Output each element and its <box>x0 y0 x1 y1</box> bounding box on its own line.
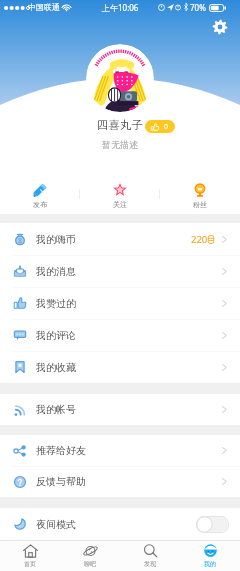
button[interactable]: 发布 <box>0 180 80 209</box>
staticText: 我的帐号 <box>36 403 76 416</box>
button[interactable]: 聊吧 <box>60 541 120 568</box>
staticText: 粉丝 <box>193 200 207 209</box>
staticText: 我的收藏 <box>36 361 76 374</box>
staticText: 首页 <box>24 560 36 568</box>
button[interactable]: 反馈与帮助 <box>0 466 240 497</box>
button[interactable]: Night mode switch <box>196 516 229 533</box>
staticText: 中国联通 <box>28 2 60 12</box>
button[interactable]: 我的嗨币 <box>0 223 240 255</box>
staticText: 推荐给好友 <box>36 444 86 457</box>
staticText: 我的 <box>204 560 216 568</box>
staticText: 70% <box>190 2 206 13</box>
staticText: 0 <box>164 122 169 132</box>
button[interactable]: Likes 0 <box>145 120 175 133</box>
button[interactable]: 我的消息 <box>0 255 240 287</box>
button[interactable]: 推荐给好友 <box>0 435 240 466</box>
button[interactable]: 关注 <box>80 180 160 209</box>
button[interactable]: 我的评论 <box>0 319 240 351</box>
button[interactable]: 我赞过的 <box>0 287 240 319</box>
button[interactable]: 我的 <box>180 541 240 568</box>
staticText: 关注 <box>113 200 127 209</box>
staticText: 220 <box>191 233 208 246</box>
button[interactable]: 首页 <box>0 541 60 568</box>
staticText: 夜间模式 <box>36 518 76 531</box>
staticText: 我的消息 <box>36 265 76 278</box>
button[interactable]: Avatar <box>86 44 154 112</box>
staticText: 我的评论 <box>36 329 76 342</box>
staticText: 发布 <box>33 200 47 209</box>
staticText: 上午10:06 <box>102 2 139 13</box>
staticText: 反馈与帮助 <box>36 475 86 488</box>
button[interactable]: 发现 <box>120 541 180 568</box>
staticText: 我赞过的 <box>36 297 76 310</box>
staticText: 聊吧 <box>84 560 96 568</box>
staticText: 四喜丸子 <box>97 118 143 132</box>
button[interactable]: 我的收藏 <box>0 351 240 383</box>
button[interactable]: 粉丝 <box>160 180 240 209</box>
staticText: 我的嗨币 <box>36 233 76 246</box>
button[interactable]: Settings <box>212 19 228 35</box>
button[interactable]: 夜间模式 <box>0 508 240 540</box>
staticText: 暂无描述 <box>102 139 138 150</box>
staticText: 发现 <box>144 560 156 568</box>
button[interactable]: 我的帐号 <box>0 394 240 425</box>
